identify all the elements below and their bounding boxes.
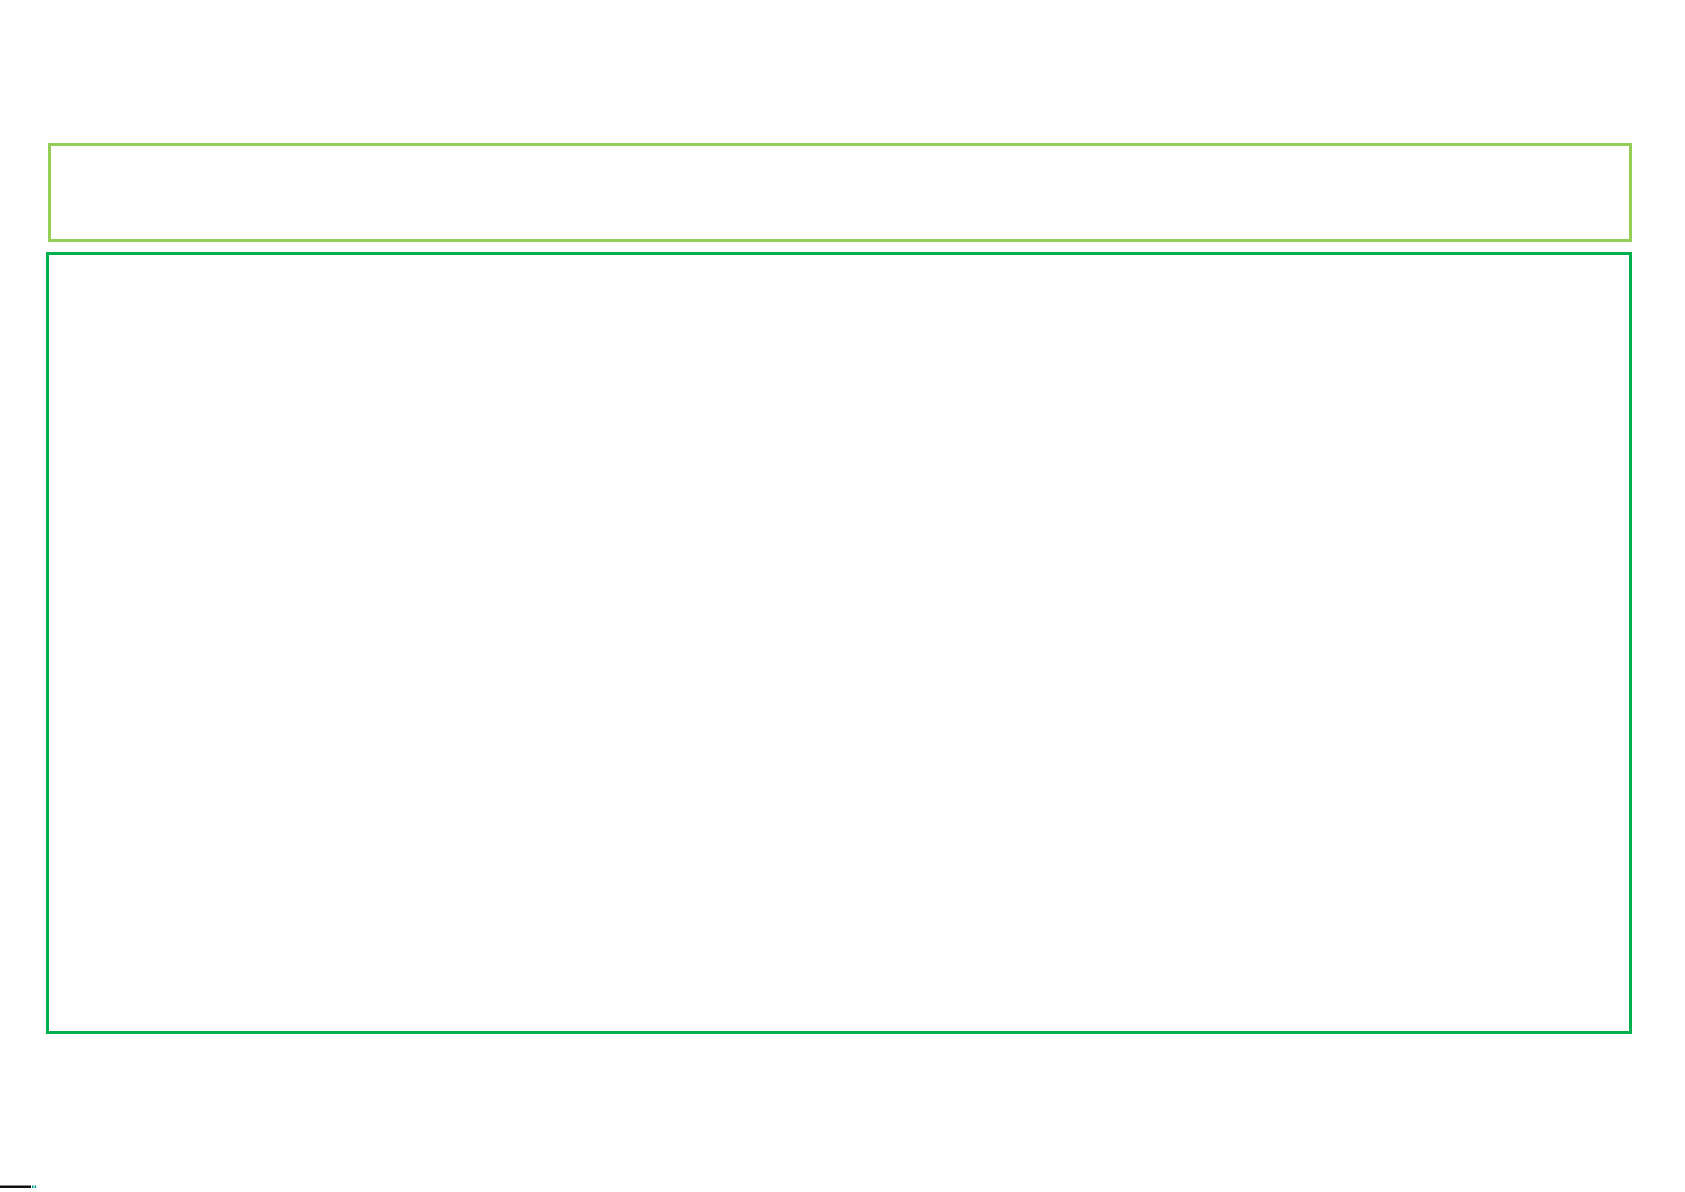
button[interactable]: Header container — [48, 143, 1632, 242]
button[interactable]: Content container — [46, 252, 1632, 1034]
